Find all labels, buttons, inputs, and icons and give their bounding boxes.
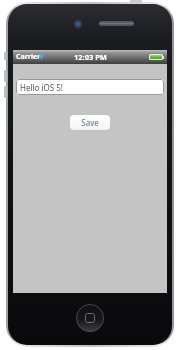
staticText: 12:03 PM — [74, 52, 107, 62]
button[interactable]: Hello iOS 5! — [16, 79, 164, 95]
button[interactable]: Save — [70, 115, 110, 130]
staticText: Save — [81, 117, 99, 128]
staticText: Hello iOS 5! — [20, 82, 63, 93]
button[interactable]: Home — [76, 304, 104, 332]
staticText: Carrier — [16, 52, 41, 62]
